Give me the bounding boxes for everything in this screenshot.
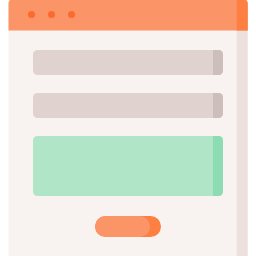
button[interactable]: Message field xyxy=(33,136,223,196)
button[interactable]: Name field xyxy=(33,50,223,75)
button[interactable]: Email field xyxy=(33,93,223,118)
button[interactable]: Close window xyxy=(28,11,35,18)
button[interactable]: Send message xyxy=(95,216,161,237)
button[interactable]: Maximise window xyxy=(68,11,75,18)
button[interactable]: Minimise window xyxy=(48,11,55,18)
